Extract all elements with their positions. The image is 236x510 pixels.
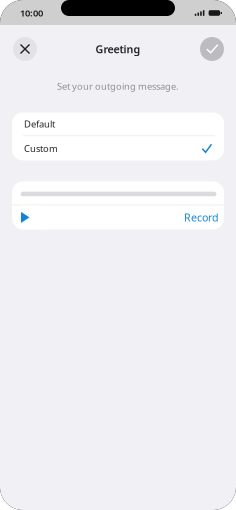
button[interactable]: Close [13,37,37,61]
staticText: 10:00 [20,7,43,19]
staticText: Default [24,118,55,130]
button[interactable]: Default [12,112,224,135]
button[interactable]: Done [200,37,224,61]
button[interactable]: Play [20,205,42,229]
button[interactable]: Custom [12,136,224,160]
staticText: Greeting [95,42,140,56]
staticText: Custom [24,142,58,154]
staticText: Set your outgoing message. [57,80,179,92]
button[interactable]: Record [178,206,219,228]
staticText: Record [184,210,219,224]
